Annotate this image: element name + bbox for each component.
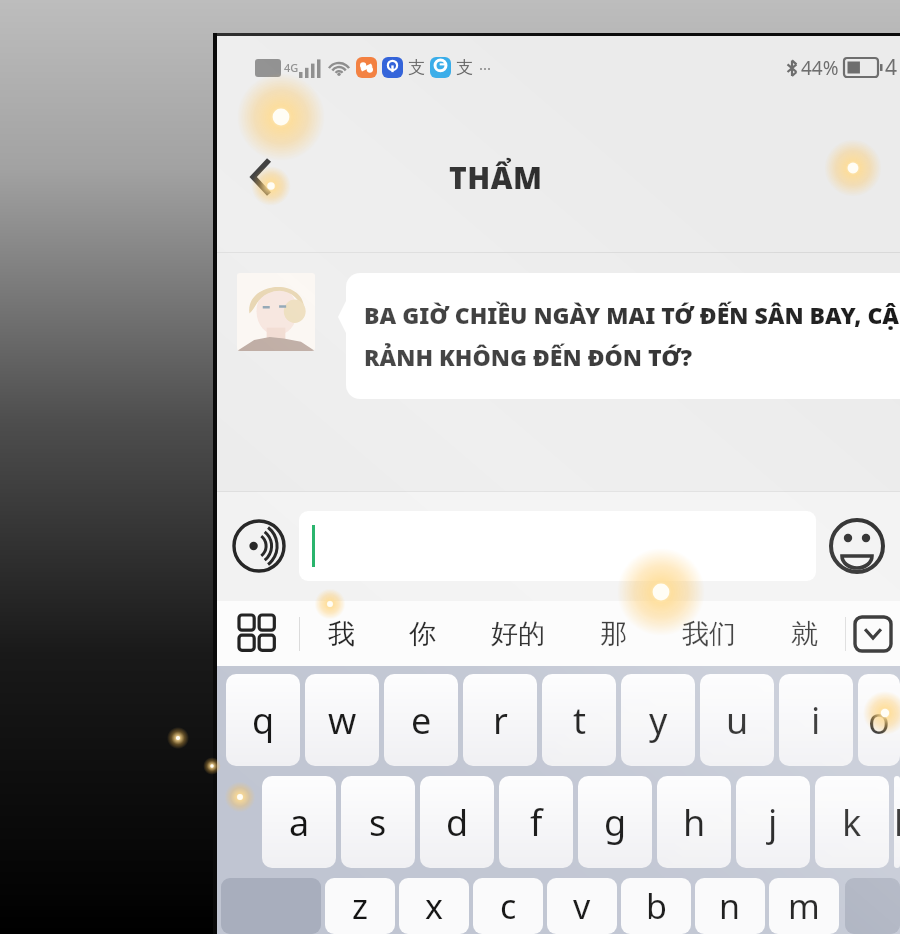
staticText: h <box>683 798 706 847</box>
button[interactable]: r <box>463 674 537 766</box>
staticText: a <box>289 798 310 847</box>
button[interactable]: Backspace <box>845 878 900 934</box>
button[interactable]: b <box>621 878 691 934</box>
button[interactable]: o <box>858 674 900 766</box>
staticText: 4G <box>284 60 299 75</box>
staticText: d <box>446 798 469 847</box>
button[interactable]: n <box>695 878 765 934</box>
staticText: m <box>788 883 820 929</box>
button[interactable]: d <box>420 776 494 868</box>
button[interactable]: z <box>325 878 395 934</box>
button[interactable]: j <box>736 776 810 868</box>
button[interactable]: s <box>341 776 415 868</box>
button[interactable]: h <box>657 776 731 868</box>
staticText: ··· <box>479 58 492 78</box>
staticText: q <box>252 696 275 745</box>
button[interactable]: Voice message <box>231 518 287 574</box>
staticText: n <box>719 883 741 929</box>
button[interactable]: c <box>473 878 543 934</box>
button[interactable]: g <box>578 776 652 868</box>
button[interactable]: 你 <box>382 601 463 666</box>
staticText: 就 <box>791 617 818 651</box>
button[interactable]: Collapse <box>846 601 900 666</box>
staticText: b <box>646 883 667 929</box>
staticText: c <box>500 883 517 929</box>
staticText: l <box>894 798 900 847</box>
button[interactable]: i <box>779 674 853 766</box>
button[interactable]: 那 <box>573 601 654 666</box>
button[interactable]: a <box>262 776 336 868</box>
staticText: 我们 <box>682 617 736 651</box>
staticText: r <box>493 696 508 745</box>
staticText: u <box>726 696 749 745</box>
button[interactable]: q <box>226 674 300 766</box>
button[interactable]: Avatar <box>237 273 315 351</box>
button[interactable]: x <box>399 878 469 934</box>
staticText: y <box>649 696 668 745</box>
staticText: 我 <box>328 617 355 651</box>
button[interactable]: 就 <box>764 601 845 666</box>
staticText: g <box>604 798 627 847</box>
button[interactable]: m <box>769 878 839 934</box>
button[interactable]: t <box>542 674 616 766</box>
staticText: i <box>811 696 821 745</box>
button[interactable]: u <box>700 674 774 766</box>
staticText: 4 <box>885 53 898 82</box>
staticText: o <box>868 696 890 745</box>
button[interactable] <box>299 511 816 581</box>
button[interactable]: w <box>305 674 379 766</box>
button[interactable]: v <box>547 878 617 934</box>
staticText: w <box>328 696 357 745</box>
button[interactable]: 好的 <box>463 601 573 666</box>
staticText: THẨM <box>449 157 543 198</box>
staticText: 好的 <box>491 617 545 651</box>
staticText: x <box>425 883 443 929</box>
staticText: s <box>369 798 387 847</box>
button[interactable]: BA GIỜ CHIỀU NGÀY MAI TỚ ĐẾN SÂN BAY, CẬ… <box>346 273 900 399</box>
staticText: k <box>842 798 862 847</box>
button[interactable]: f <box>499 776 573 868</box>
staticText: f <box>530 798 543 847</box>
button[interactable]: Emoji <box>828 517 886 575</box>
staticText: z <box>352 883 368 929</box>
staticText: v <box>573 883 591 929</box>
staticText: e <box>411 696 432 745</box>
button[interactable]: 我 <box>300 601 382 666</box>
staticText: 支 <box>456 57 473 78</box>
staticText: 44% <box>801 55 839 81</box>
button[interactable]: l <box>894 776 900 868</box>
button[interactable]: Back <box>233 148 291 206</box>
staticText: BA GIỜ CHIỀU NGÀY MAI TỚ ĐẾN SÂN BAY, CẬ… <box>364 299 900 373</box>
button[interactable]: Keyboard menu <box>217 601 299 666</box>
button[interactable]: k <box>815 776 889 868</box>
button[interactable]: e <box>384 674 458 766</box>
staticText: 那 <box>600 617 627 651</box>
staticText: j <box>768 798 778 847</box>
button[interactable]: 我们 <box>654 601 764 666</box>
staticText: 支 <box>408 57 425 78</box>
staticText: 你 <box>409 617 436 651</box>
button[interactable]: y <box>621 674 695 766</box>
staticText: t <box>573 696 586 745</box>
